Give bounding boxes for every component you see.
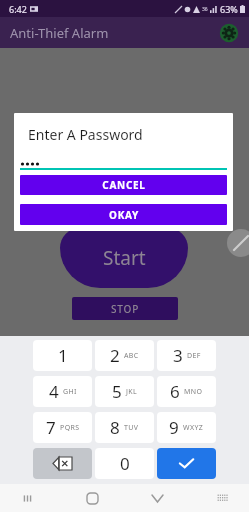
button[interactable]: Recent apps (14, 485, 40, 511)
staticText: Anti-Thief Alarm (10, 24, 109, 42)
staticText: DEF (187, 351, 201, 361)
staticText: TUV (124, 423, 139, 433)
staticText: OKAY (109, 208, 139, 222)
staticText: Enter A Password (28, 125, 143, 144)
button[interactable]: Home (79, 485, 105, 511)
button[interactable]: Enter (157, 448, 216, 479)
button[interactable]: Edit (227, 229, 249, 257)
button[interactable]: 0 (95, 448, 154, 479)
button[interactable]: Backspace (33, 448, 92, 479)
button[interactable]: 7 (33, 412, 92, 443)
button[interactable]: CANCEL (20, 175, 227, 195)
staticText: GHI (63, 387, 77, 397)
button[interactable]: Settings (219, 23, 239, 43)
staticText: PQRS (60, 423, 80, 433)
button[interactable]: 2 (95, 340, 154, 371)
staticText: 2 (110, 344, 120, 367)
staticText: 6:42 (9, 3, 27, 15)
staticText: 63% (220, 3, 238, 15)
staticText: 9 (169, 416, 179, 439)
button[interactable]: 9 (157, 412, 216, 443)
staticText: CANCEL (102, 178, 146, 192)
staticText: 5 (112, 380, 122, 403)
staticText: Start (103, 245, 146, 271)
staticText: 0 (120, 452, 130, 475)
staticText: 6 (170, 380, 180, 403)
staticText: 4 (49, 380, 59, 403)
staticText: 36 (202, 6, 208, 13)
staticText: 7 (46, 416, 56, 439)
button[interactable]: Change keyboard (209, 485, 235, 511)
staticText: JKL (126, 387, 138, 397)
button[interactable]: 4 (33, 376, 92, 407)
button[interactable]: 3 (157, 340, 216, 371)
staticText: 1 (58, 344, 68, 367)
staticText: STOP (111, 302, 140, 316)
staticText: 3 (173, 344, 183, 367)
staticText: ABC (124, 351, 139, 361)
button[interactable]: 8 (95, 412, 154, 443)
staticText: 8 (110, 416, 120, 439)
staticText: MNO (184, 387, 203, 397)
button[interactable]: OKAY (20, 204, 227, 225)
button[interactable]: 1 (33, 340, 92, 371)
button[interactable]: 5 (95, 376, 154, 407)
button[interactable]: 6 (157, 376, 216, 407)
button[interactable]: STOP (72, 297, 178, 320)
button[interactable]: Start (60, 228, 188, 288)
button[interactable]: Hide keyboard (144, 485, 170, 511)
staticText: WXYZ (183, 423, 204, 433)
